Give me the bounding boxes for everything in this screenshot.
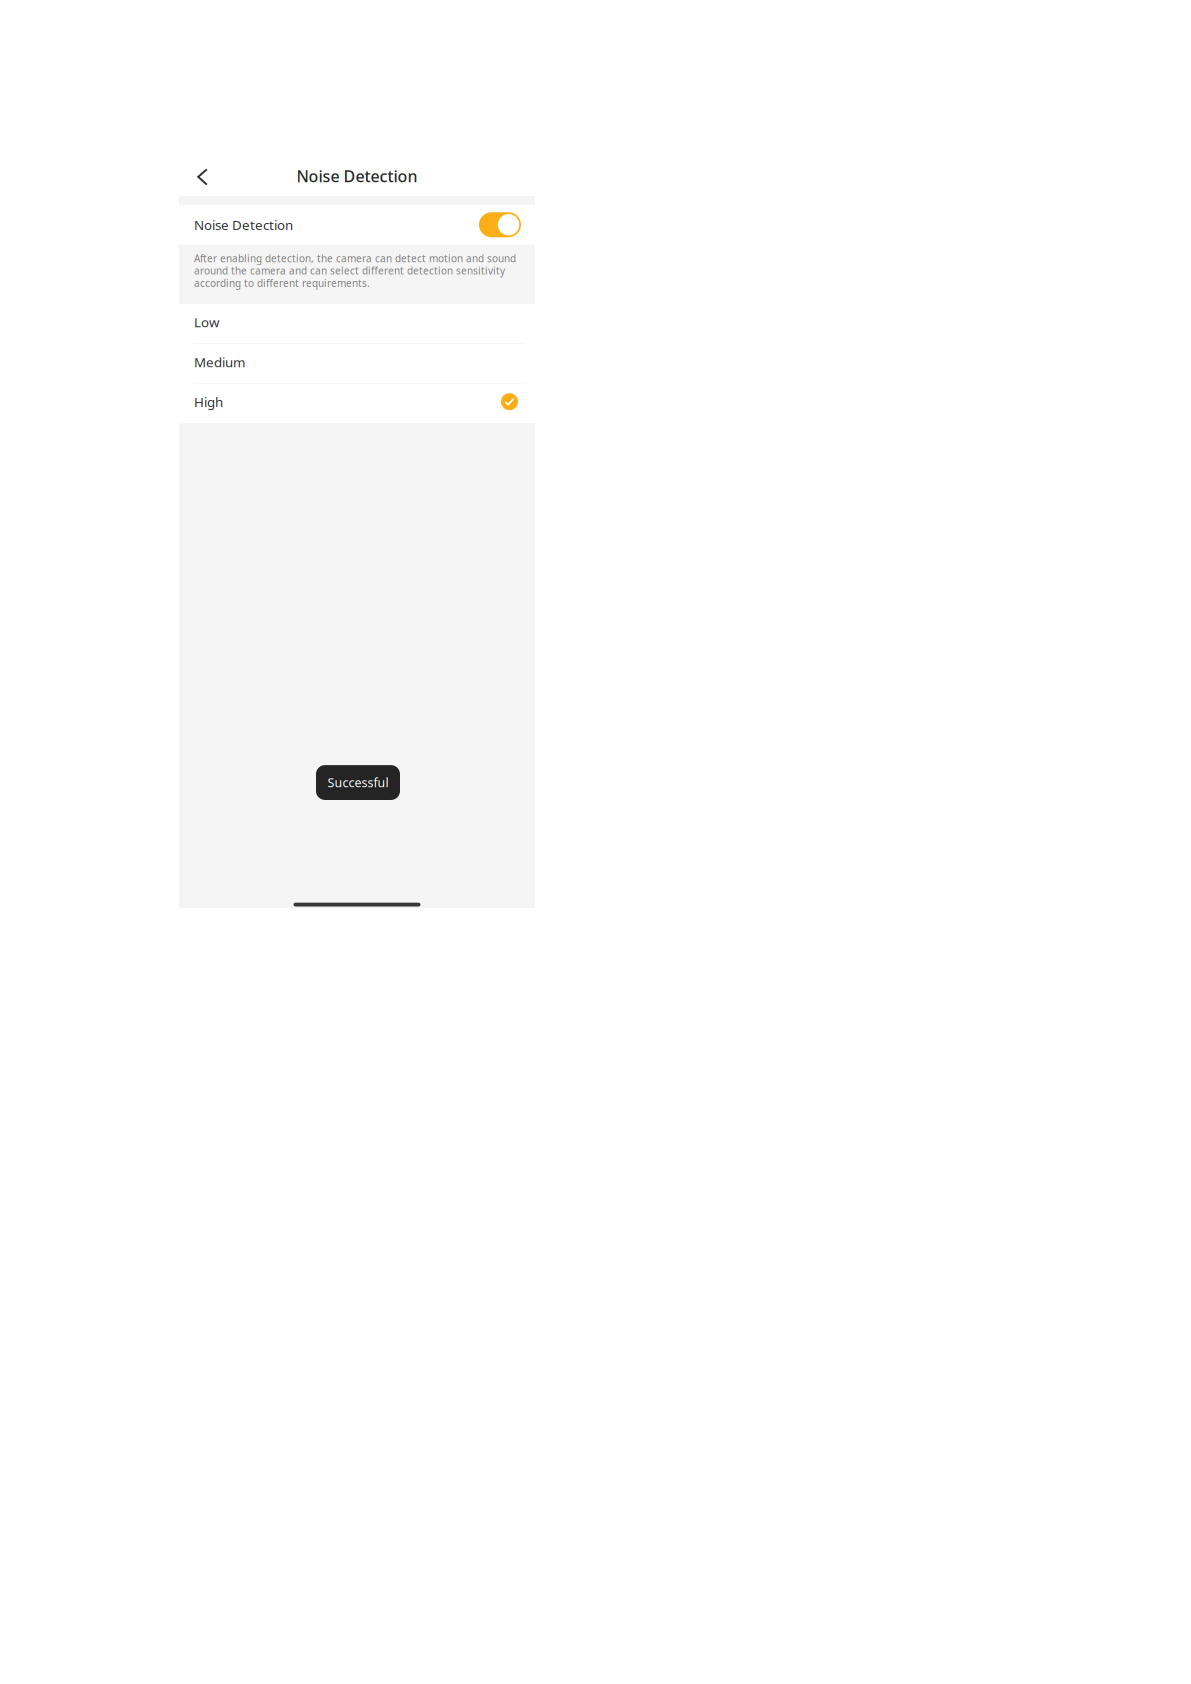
staticText: around the camera and can select differe… [194, 264, 505, 277]
staticText: Noise Detection [194, 216, 293, 234]
button[interactable]: Back [179, 152, 221, 196]
staticText: according to different requirements. [194, 276, 370, 290]
staticText: Low [194, 313, 219, 331]
button[interactable]: Low [179, 304, 535, 343]
button[interactable]: Medium [179, 344, 535, 383]
button[interactable]: Noise Detection [179, 205, 535, 244]
button[interactable]: High [179, 384, 535, 423]
staticText: Medium [194, 353, 245, 371]
staticText: High [194, 393, 223, 411]
staticText: Noise Detection [296, 165, 417, 187]
staticText: Successful [327, 774, 388, 791]
staticText: After enabling detection, the camera can… [194, 251, 516, 265]
